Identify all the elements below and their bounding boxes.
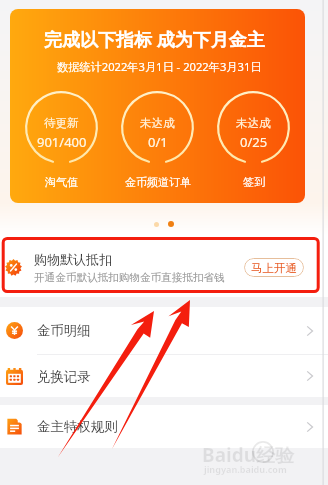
staticText: 金币频道订单 bbox=[125, 175, 191, 189]
staticText: Baidu经验 bbox=[202, 442, 295, 468]
staticText: 数据统计2022年3月1日 - 2022年3月31日 bbox=[57, 59, 262, 74]
button[interactable]: 马上开通 bbox=[244, 258, 304, 277]
staticText: jingyan.baidu.com bbox=[204, 463, 287, 475]
staticText: 0/1 bbox=[148, 133, 168, 151]
button[interactable]: 完成以下指标 成为下月金主 bbox=[10, 9, 305, 203]
staticText: 未达成 bbox=[140, 116, 175, 130]
staticText: 兑换记录 bbox=[37, 368, 91, 385]
button[interactable]: 购物默认抵扣 bbox=[0, 236, 328, 297]
staticText: 完成以下指标 成为下月金主 bbox=[44, 27, 265, 52]
button[interactable]: 兑换记录 bbox=[0, 355, 328, 397]
staticText: 签到 bbox=[243, 175, 265, 189]
staticText: 开通金币默认抵扣购物金币直接抵扣省钱 bbox=[34, 271, 225, 284]
staticText: 未达成 bbox=[236, 116, 271, 130]
staticText: 0/25 bbox=[240, 133, 268, 151]
staticText: 金币明细 bbox=[37, 322, 91, 339]
staticText: 淘气值 bbox=[45, 175, 78, 189]
staticText: 马上开通 bbox=[251, 261, 297, 275]
staticText: 购物默认抵扣 bbox=[34, 251, 112, 267]
staticText: 待更新 bbox=[44, 116, 79, 130]
button[interactable]: 金主特权规则 bbox=[0, 405, 328, 448]
staticText: 901/400 bbox=[37, 133, 87, 151]
button[interactable]: 金币明细 bbox=[0, 307, 328, 354]
staticText: 金主特权规则 bbox=[37, 418, 118, 435]
